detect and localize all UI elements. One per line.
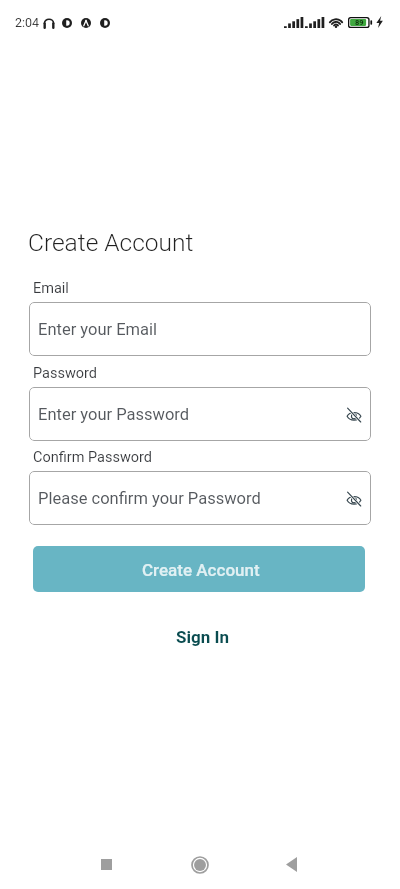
staticText: Please confirm your Password (38, 489, 341, 508)
button[interactable]: Enter your Password (29, 387, 371, 441)
button[interactable]: Show password (341, 401, 367, 427)
button[interactable]: Please confirm your Password (29, 471, 371, 525)
staticText: Confirm Password (33, 449, 153, 466)
staticText: Email (33, 280, 69, 297)
button[interactable]: Show password (341, 485, 367, 511)
staticText: Sign In (176, 627, 229, 647)
button[interactable]: Home (177, 842, 222, 887)
staticText: 89 (355, 18, 364, 27)
staticText: 2:04 (15, 15, 40, 30)
button[interactable]: Back (269, 842, 314, 887)
button[interactable]: Enter your Email (29, 302, 371, 356)
staticText: Enter your Password (38, 405, 341, 424)
staticText: Password (33, 365, 98, 382)
staticText: Create Account (142, 560, 260, 580)
button[interactable]: Recent apps (84, 842, 129, 887)
button[interactable]: Create Account (33, 546, 365, 592)
staticText: Create Account (28, 228, 194, 257)
staticText: Enter your Email (38, 320, 367, 339)
button[interactable]: Sign In (162, 620, 243, 654)
